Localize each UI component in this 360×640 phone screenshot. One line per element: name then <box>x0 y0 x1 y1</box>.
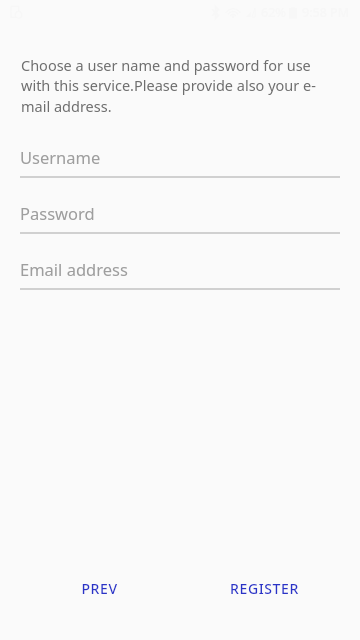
staticText: PREV <box>81 579 118 598</box>
button[interactable]: Email address <box>20 258 340 290</box>
staticText: Username <box>20 146 101 168</box>
staticText: REGISTER <box>230 579 299 598</box>
button[interactable]: PREV <box>66 570 132 606</box>
button[interactable]: Username <box>20 146 340 178</box>
staticText: Choose a user name and password for use … <box>21 55 321 117</box>
staticText: Password <box>20 202 95 224</box>
staticText: Email address <box>20 258 128 280</box>
button[interactable]: Password <box>20 202 340 234</box>
button[interactable]: REGISTER <box>218 570 310 606</box>
